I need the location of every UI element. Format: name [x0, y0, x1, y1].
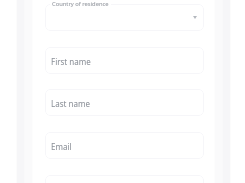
button[interactable]: First name	[45, 47, 204, 74]
staticText: Country of residence	[52, 0, 109, 8]
button[interactable]: Country of residence	[45, 4, 204, 31]
staticText: First name	[51, 56, 91, 67]
staticText: Email	[51, 141, 72, 152]
button[interactable]: Email	[45, 132, 204, 159]
button[interactable]: Last name	[45, 89, 204, 116]
staticText: Last name	[51, 98, 90, 109]
